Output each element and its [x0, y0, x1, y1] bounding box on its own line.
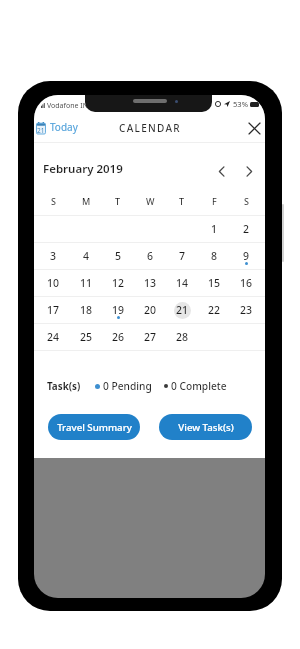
staticText: 3 [50, 249, 57, 263]
staticText: 16 [240, 276, 253, 290]
staticText: W [146, 195, 155, 207]
staticText: 23 [240, 303, 253, 317]
staticText: 14 [176, 276, 189, 290]
button[interactable]: 4 [70, 243, 102, 269]
staticText: 10 [47, 276, 60, 290]
button[interactable]: 19 [102, 297, 134, 323]
staticText: 53% [233, 99, 248, 109]
button[interactable]: 2 [230, 216, 262, 242]
staticText: F [212, 195, 217, 207]
button[interactable]: Previous month [211, 161, 231, 181]
button[interactable]: 16 [230, 270, 262, 296]
staticText: 22 [208, 303, 221, 317]
staticText: 2 [243, 222, 250, 236]
button[interactable]: 21 [34, 117, 84, 139]
staticText: 6 [147, 249, 154, 263]
button[interactable]: 3 [37, 243, 70, 269]
button[interactable]: Next month [239, 161, 259, 181]
staticText: 26 [112, 330, 125, 344]
staticText: Vodafone IN [47, 101, 88, 111]
staticText: February 2019 [43, 161, 123, 177]
button[interactable]: 7 [166, 243, 198, 269]
button[interactable]: 26 [102, 324, 134, 350]
staticText: 11 [80, 276, 93, 290]
button[interactable]: 10 [37, 270, 70, 296]
staticText: 25 [80, 330, 93, 344]
button[interactable]: Close [244, 118, 264, 138]
button[interactable]: 28 [166, 324, 198, 350]
button[interactable]: 9 [230, 243, 262, 269]
button[interactable]: 21 [166, 297, 198, 323]
button[interactable]: 11 [70, 270, 102, 296]
staticText: 24 [47, 330, 60, 344]
button[interactable]: 18 [70, 297, 102, 323]
staticText: 9 [243, 249, 250, 263]
staticText: Task(s) [47, 380, 81, 393]
staticText: 12 [112, 276, 125, 290]
button[interactable]: 5 [102, 243, 134, 269]
staticText: M [82, 195, 91, 207]
button[interactable]: 20 [134, 297, 166, 323]
staticText: 28 [176, 330, 189, 344]
button[interactable]: 15 [198, 270, 230, 296]
button[interactable]: 27 [134, 324, 166, 350]
button[interactable]: Travel Summary [48, 414, 140, 440]
button[interactable]: View Task(s) [159, 414, 252, 440]
button[interactable]: 8 [198, 243, 230, 269]
staticText: 18 [80, 303, 93, 317]
staticText: 27 [144, 330, 157, 344]
staticText: 1 [211, 222, 218, 236]
button[interactable]: 1 [198, 216, 230, 242]
staticText: 5 [115, 249, 122, 263]
button[interactable]: 12 [102, 270, 134, 296]
button[interactable]: 23 [230, 297, 262, 323]
staticText: T [115, 195, 121, 207]
staticText: 19 [112, 303, 125, 317]
staticText: 15 [208, 276, 221, 290]
staticText: Today [50, 120, 78, 134]
staticText: S [244, 195, 249, 207]
staticText: CALENDAR [119, 121, 181, 135]
staticText: 8 [211, 249, 218, 263]
staticText: 4 [83, 249, 90, 263]
staticText: 0 Pending [103, 379, 152, 393]
staticText: S [51, 195, 56, 207]
button[interactable]: 25 [70, 324, 102, 350]
staticText: 0 Complete [171, 379, 227, 393]
staticText: T [179, 195, 185, 207]
button[interactable]: 24 [37, 324, 70, 350]
staticText: Travel Summary [57, 421, 132, 434]
button[interactable]: 22 [198, 297, 230, 323]
button[interactable]: 13 [134, 270, 166, 296]
button[interactable]: 17 [37, 297, 70, 323]
button[interactable]: 6 [134, 243, 166, 269]
button[interactable]: 14 [166, 270, 198, 296]
staticText: 21 [37, 126, 45, 135]
staticText: 7 [179, 249, 186, 263]
staticText: 21 [176, 303, 189, 317]
staticText: 17 [47, 303, 60, 317]
staticText: 20 [144, 303, 157, 317]
staticText: View Task(s) [178, 421, 234, 434]
staticText: 13 [144, 276, 157, 290]
